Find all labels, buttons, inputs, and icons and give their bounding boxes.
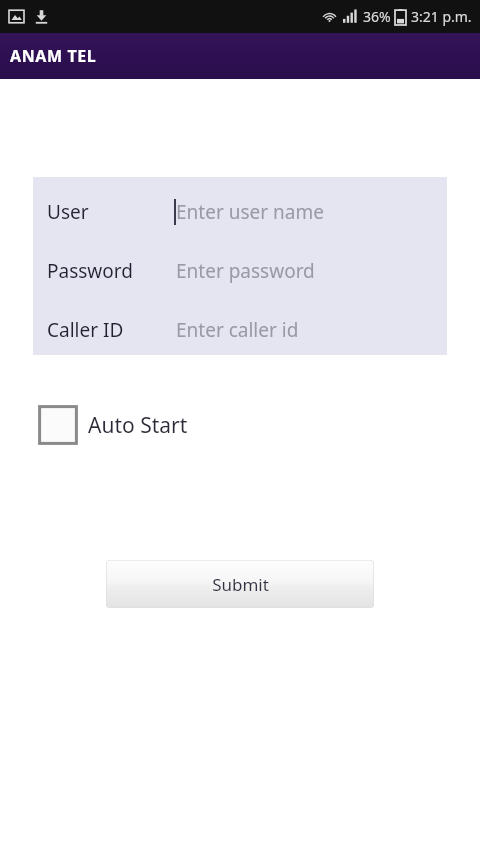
staticText: Enter caller id [176,317,299,343]
staticText: Password [47,258,133,284]
button[interactable]: Caller ID [33,309,447,350]
staticText: Caller ID [47,317,124,343]
button[interactable]: Password [33,250,447,291]
staticText: 36% [363,7,391,26]
staticText: ANAM TEL [10,45,97,67]
staticText: Enter password [176,258,315,284]
button[interactable]: Submit [106,560,374,608]
staticText: Auto Start [88,411,188,440]
staticText: User [47,199,89,225]
staticText: 3:21 p.m. [411,7,472,26]
button[interactable]: Auto Start [38,403,188,447]
button[interactable]: User [33,191,447,232]
staticText: Enter user name [176,199,324,225]
staticText: Submit [212,573,269,596]
